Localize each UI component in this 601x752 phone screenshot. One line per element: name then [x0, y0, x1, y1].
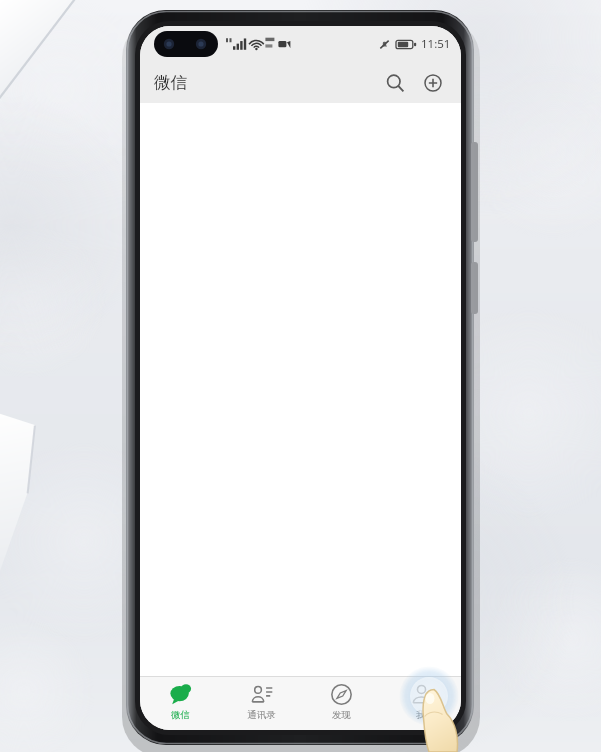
staticText: 通讯录	[247, 709, 276, 721]
staticText: 微信	[154, 72, 187, 93]
button[interactable]: 通讯录	[221, 677, 301, 730]
button[interactable]: Search	[379, 67, 411, 99]
staticText: 发现	[332, 709, 351, 721]
staticText: 11:51	[421, 36, 451, 52]
button[interactable]: 微信	[140, 677, 221, 730]
button[interactable]: 发现	[301, 677, 381, 730]
button[interactable]: Add	[417, 67, 449, 99]
button[interactable]: 我	[381, 677, 461, 730]
staticText: 微信	[171, 709, 190, 721]
staticText: 我	[416, 709, 426, 721]
